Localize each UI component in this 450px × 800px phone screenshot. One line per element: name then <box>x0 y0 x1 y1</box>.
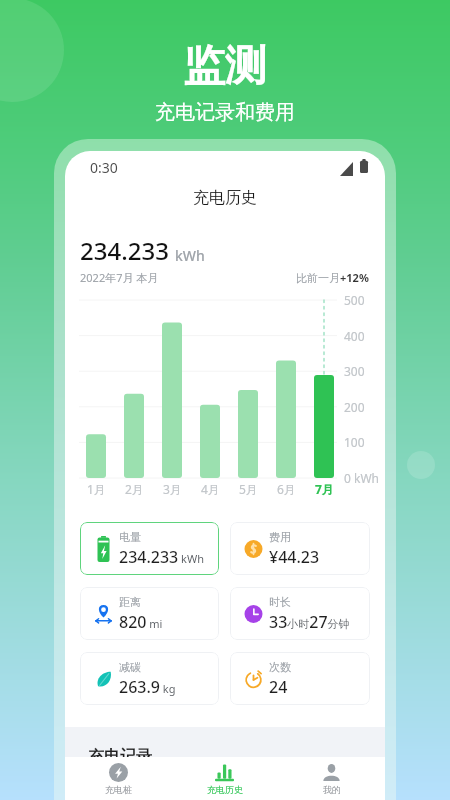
staticText: 33小时27分钟 <box>269 611 350 633</box>
staticText: 费用 <box>269 530 291 544</box>
button[interactable]: 减碳 <box>80 652 219 705</box>
staticText: 234.233 kWh <box>119 546 205 568</box>
staticText: 充电记录 <box>88 747 152 757</box>
button[interactable]: 我的 <box>278 757 385 800</box>
staticText: 时长 <box>269 595 291 609</box>
staticText: 1月 <box>87 481 106 497</box>
staticText: 5月 <box>239 481 258 497</box>
staticText: 次数 <box>269 660 291 674</box>
staticText: 300 <box>344 363 365 379</box>
button[interactable]: 充电桩 <box>65 757 171 800</box>
staticText: 2月 <box>125 481 144 497</box>
button[interactable]: 次数 <box>230 652 370 705</box>
staticText: 4月 <box>201 481 220 497</box>
button[interactable]: 充电历史 <box>171 757 278 800</box>
staticText: kWh <box>175 246 205 265</box>
staticText: 充电桩 <box>105 784 132 795</box>
staticText: 我的 <box>323 784 341 795</box>
button[interactable]: 时长 <box>230 587 370 640</box>
staticText: 充电历史 <box>207 784 243 795</box>
button[interactable]: 费用 <box>230 522 370 575</box>
staticText: 0 kWh <box>344 470 379 486</box>
staticText: 500 <box>344 292 365 308</box>
button[interactable]: 电量 <box>80 522 219 575</box>
staticText: 比前一月 <box>296 271 340 285</box>
staticText: 充电历史 <box>193 188 257 208</box>
staticText: 减碳 <box>119 660 141 674</box>
staticText: 234.233 <box>80 234 169 267</box>
staticText: 2022年7月 本月 <box>80 270 159 285</box>
staticText: 263.9 kg <box>119 676 176 698</box>
staticText: ¥44.23 <box>269 546 320 568</box>
staticText: 电量 <box>119 530 141 544</box>
staticText: 400 <box>344 328 365 344</box>
button[interactable]: 距离 <box>80 587 219 640</box>
staticText: 6月 <box>277 481 296 497</box>
staticText: 7月 <box>315 481 334 497</box>
staticText: 充电记录和费用 <box>155 100 295 125</box>
staticText: 0:30 <box>90 158 118 177</box>
staticText: 100 <box>344 434 365 450</box>
staticText: 3月 <box>163 481 182 497</box>
staticText: 200 <box>344 399 365 415</box>
staticText: 监测 <box>183 40 267 93</box>
staticText: 820 mi <box>119 611 163 633</box>
staticText: 距离 <box>119 595 141 609</box>
staticText: +12% <box>340 270 369 285</box>
staticText: 24 <box>269 676 288 698</box>
